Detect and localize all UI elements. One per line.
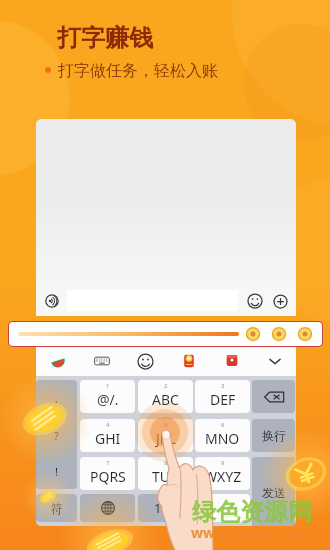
- button[interactable]: [9, 322, 322, 346]
- button[interactable]: 换行: [252, 419, 295, 452]
- button[interactable]: !: [36, 453, 77, 489]
- button[interactable]: Sticker: [36, 346, 80, 376]
- staticText: 123: [154, 499, 177, 517]
- button[interactable]: Envelope: [210, 346, 253, 376]
- staticText: 打字赚钱: [57, 23, 153, 53]
- button[interactable]: 1: [80, 380, 135, 413]
- staticText: TUV: [152, 467, 179, 486]
- staticText: JKL: [156, 429, 176, 448]
- button[interactable]: ?: [36, 417, 77, 453]
- staticText: 6: [221, 421, 225, 429]
- button[interactable]: 发送: [252, 457, 295, 526]
- button[interactable]: Keyboard: [80, 346, 124, 376]
- staticText: ,: [55, 391, 58, 406]
- button[interactable]: 8: [138, 457, 193, 490]
- button[interactable]: Collapse: [253, 346, 296, 376]
- button[interactable]: ,: [36, 380, 77, 417]
- staticText: 1: [106, 382, 110, 390]
- staticText: MNO: [205, 429, 240, 448]
- button[interactable]: Voice input: [41, 290, 63, 312]
- button[interactable]: 4: [80, 419, 135, 452]
- button[interactable]: Space: [195, 494, 250, 522]
- button[interactable]: 2: [138, 380, 193, 413]
- button[interactable]: 7: [80, 457, 135, 490]
- button[interactable]: 符: [36, 494, 77, 522]
- staticText: 8: [164, 459, 168, 467]
- button[interactable]: 123: [138, 494, 193, 522]
- staticText: GHI: [95, 429, 121, 448]
- staticText: 符: [51, 501, 63, 516]
- staticText: 4: [106, 421, 110, 429]
- staticText: 9: [221, 459, 225, 467]
- staticText: 发送: [262, 485, 286, 500]
- staticText: 绿色资源网: [192, 497, 312, 527]
- staticText: www.downcc.com: [191, 523, 317, 542]
- button[interactable]: Backspace: [252, 380, 295, 413]
- button[interactable]: 5: [138, 419, 193, 452]
- staticText: PQRS: [90, 467, 126, 486]
- staticText: WXYZ: [204, 467, 242, 486]
- staticText: !: [55, 464, 58, 479]
- staticText: ?: [54, 428, 59, 443]
- button[interactable]: Red packet: [167, 346, 210, 376]
- staticText: @/.: [97, 390, 119, 409]
- staticText: 5: [164, 421, 168, 429]
- button[interactable]: Emoji: [124, 346, 167, 376]
- button[interactable]: 6: [195, 419, 250, 452]
- button[interactable]: More: [269, 290, 291, 312]
- staticText: 2: [164, 382, 168, 390]
- button[interactable]: 3: [195, 380, 250, 413]
- button[interactable]: Language: [80, 494, 135, 522]
- staticText: 换行: [262, 428, 286, 443]
- staticText: DEF: [210, 390, 236, 409]
- button[interactable]: 9: [195, 457, 250, 490]
- staticText: 3: [221, 382, 225, 390]
- button[interactable]: Emoji: [244, 290, 266, 312]
- staticText: 7: [106, 459, 110, 467]
- staticText: 打字做任务，轻松入账: [58, 61, 218, 81]
- staticText: ABC: [152, 390, 179, 409]
